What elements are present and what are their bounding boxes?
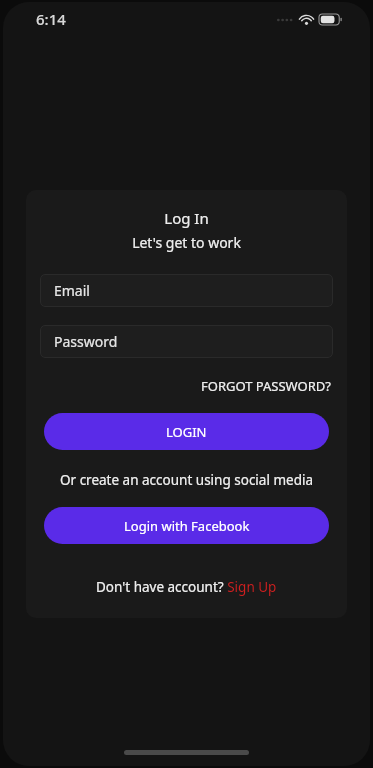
- staticText: LOGIN: [166, 423, 207, 441]
- staticText: Email: [54, 281, 90, 300]
- staticText: Password: [54, 332, 118, 351]
- staticText: Log In: [26, 208, 347, 228]
- button[interactable]: FORGOT PASSWORD?: [199, 375, 333, 397]
- button[interactable]: Login with Facebook: [44, 507, 329, 544]
- button[interactable]: Email: [40, 274, 333, 307]
- button[interactable]: Don't have account? Sign Up: [93, 576, 280, 598]
- staticText: Or create an account using social media: [26, 471, 347, 489]
- staticText: Don't have account? Sign Up: [96, 578, 277, 596]
- button[interactable]: Password: [40, 325, 333, 358]
- button[interactable]: LOGIN: [44, 413, 329, 450]
- staticText: 6:14: [36, 9, 66, 29]
- staticText: Let's get to work: [26, 233, 347, 252]
- staticText: Login with Facebook: [124, 517, 250, 535]
- staticText: FORGOT PASSWORD?: [201, 377, 331, 395]
